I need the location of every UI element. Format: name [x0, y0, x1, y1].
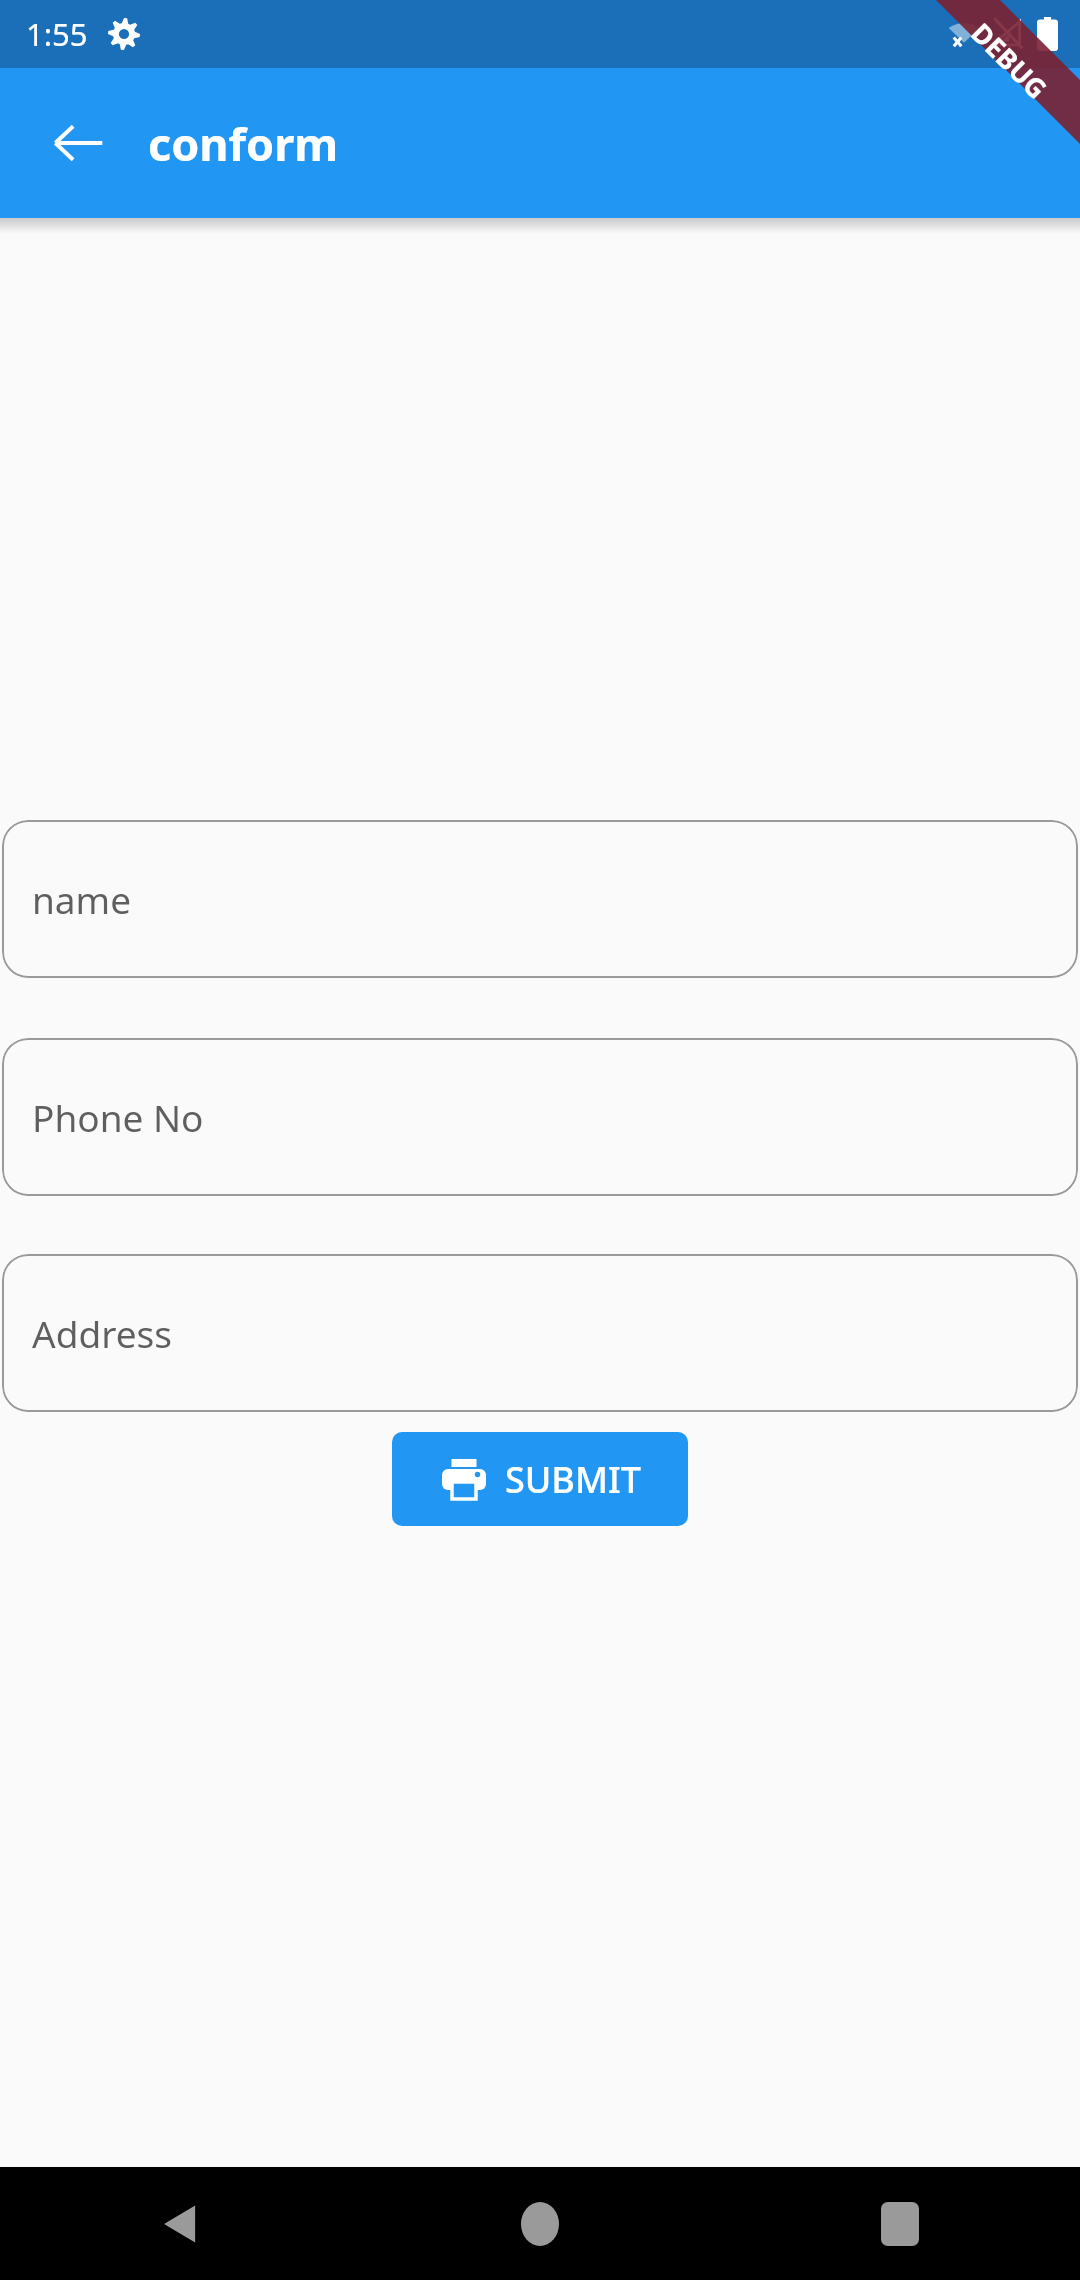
button[interactable]: Address: [2, 1254, 1078, 1412]
button[interactable]: Phone No: [2, 1038, 1078, 1196]
button[interactable]: name: [2, 820, 1078, 978]
button[interactable]: SUBMIT: [392, 1432, 688, 1526]
staticText: Phone No: [32, 1092, 204, 1142]
staticText: 1:55: [26, 13, 88, 55]
staticText: name: [32, 874, 132, 924]
staticText: SUBMIT: [505, 1455, 641, 1504]
button[interactable]: Back: [125, 2169, 235, 2279]
staticText: conform: [148, 113, 339, 174]
button[interactable]: Home: [485, 2169, 595, 2279]
staticText: DEBUG: [963, 14, 1055, 106]
button[interactable]: Back: [28, 93, 128, 193]
button[interactable]: Recents: [845, 2169, 955, 2279]
staticText: Address: [32, 1308, 173, 1358]
